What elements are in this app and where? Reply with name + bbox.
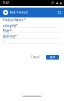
staticText: Add Product xyxy=(10,11,28,14)
button[interactable]: Profile xyxy=(3,10,8,15)
staticText: 0.00 xyxy=(3,33,10,37)
staticText: Cancel xyxy=(31,55,40,59)
staticText: * xyxy=(16,24,17,27)
staticText: Category xyxy=(3,24,16,27)
staticText: Quantity xyxy=(3,35,15,38)
staticText: * xyxy=(15,35,16,38)
staticText: * xyxy=(10,29,11,33)
staticText: Product Name xyxy=(3,19,24,22)
button[interactable]: Save xyxy=(46,55,59,60)
staticText: 0 xyxy=(3,39,5,42)
button[interactable]: Cancel xyxy=(29,55,42,60)
staticText: Enter name xyxy=(3,23,18,26)
staticText: Price xyxy=(3,29,10,33)
staticText: Save xyxy=(49,55,55,59)
button[interactable]: Close xyxy=(58,11,61,14)
staticText: 9:41 xyxy=(3,1,10,5)
staticText: ıll ◆ ▮ xyxy=(51,1,61,5)
staticText: Select xyxy=(3,28,11,32)
staticText: * xyxy=(24,19,25,22)
